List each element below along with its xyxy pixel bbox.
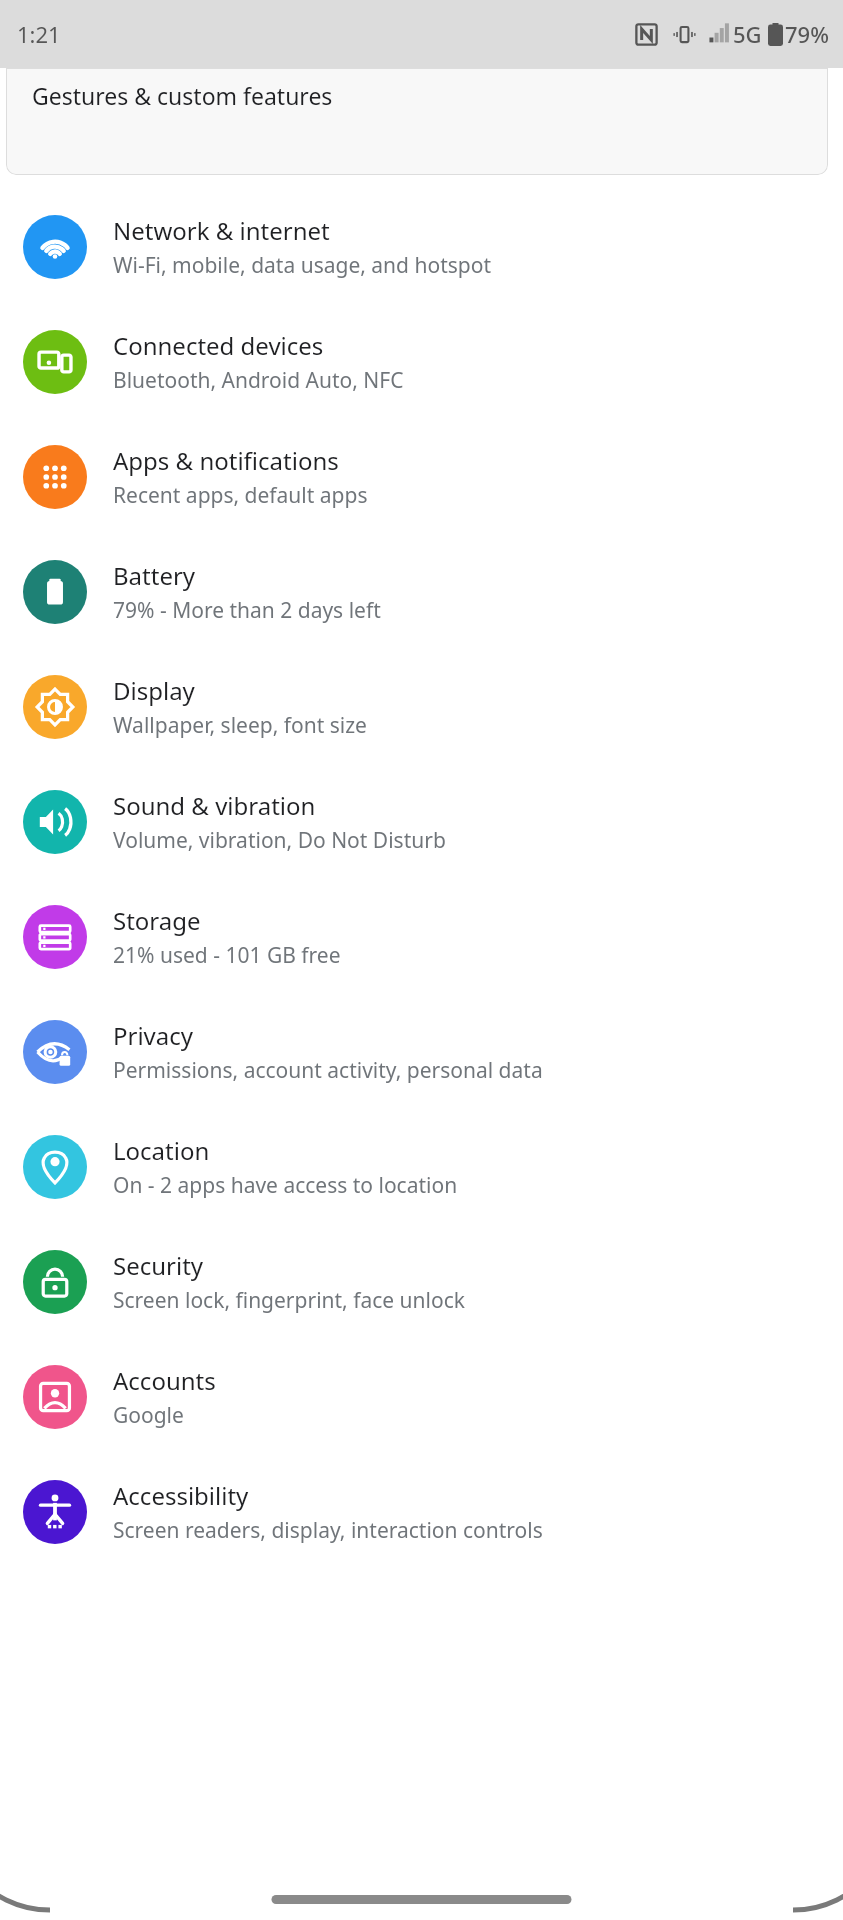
staticText: Screen lock, fingerprint, face unlock: [113, 1286, 465, 1315]
button[interactable]: Storage: [0, 879, 843, 994]
staticText: Location: [113, 1134, 210, 1167]
staticText: Security: [113, 1249, 204, 1282]
staticText: 21% used - 101 GB free: [113, 941, 341, 970]
staticText: Accessibility: [113, 1479, 249, 1512]
staticText: 79%: [785, 19, 829, 49]
staticText: Google: [113, 1401, 184, 1430]
button[interactable]: Accessibility: [0, 1454, 843, 1569]
button[interactable]: Gestures & custom features: [6, 68, 828, 175]
other: Connected devices: [23, 330, 87, 394]
other: Apps & notifications: [23, 445, 87, 509]
other: Accounts: [23, 1365, 87, 1429]
staticText: Gestures & custom features: [32, 80, 333, 111]
staticText: 79% - More than 2 days left: [113, 596, 381, 625]
button[interactable]: Battery: [0, 534, 843, 649]
other: Display: [23, 675, 87, 739]
other: Security: [23, 1250, 87, 1314]
button[interactable]: Network & internet: [0, 189, 843, 304]
staticText: Storage: [113, 904, 201, 937]
button[interactable]: Connected devices: [0, 304, 843, 419]
other: Accessibility: [23, 1480, 87, 1544]
other: Privacy: [23, 1020, 87, 1084]
staticText: Battery: [113, 559, 196, 592]
other: Network & internet: [23, 215, 87, 279]
other: Sound & vibration: [23, 790, 87, 854]
button[interactable]: Accounts: [0, 1339, 843, 1454]
button[interactable]: Apps & notifications: [0, 419, 843, 534]
staticText: Volume, vibration, Do Not Disturb: [113, 826, 446, 855]
staticText: Display: [113, 674, 195, 707]
staticText: Bluetooth, Android Auto, NFC: [113, 366, 404, 395]
staticText: Permissions, account activity, personal …: [113, 1056, 543, 1085]
button[interactable]: Security: [0, 1224, 843, 1339]
staticText: 1:21: [17, 19, 61, 49]
staticText: Wallpaper, sleep, font size: [113, 711, 367, 740]
button[interactable]: Privacy: [0, 994, 843, 1109]
staticText: On - 2 apps have access to location: [113, 1171, 458, 1200]
staticText: Apps & notifications: [113, 444, 339, 477]
staticText: 5G: [733, 19, 762, 49]
staticText: Connected devices: [113, 329, 324, 362]
button[interactable]: Display: [0, 649, 843, 764]
staticText: Recent apps, default apps: [113, 481, 368, 510]
button[interactable]: Location: [0, 1109, 843, 1224]
staticText: Accounts: [113, 1364, 216, 1397]
other: Location: [23, 1135, 87, 1199]
staticText: Screen readers, display, interaction con…: [113, 1516, 543, 1545]
staticText: Wi-Fi, mobile, data usage, and hotspot: [113, 251, 491, 280]
staticText: Sound & vibration: [113, 789, 316, 822]
other: Storage: [23, 905, 87, 969]
button[interactable]: Sound & vibration: [0, 764, 843, 879]
staticText: Network & internet: [113, 214, 330, 247]
other: Battery: [23, 560, 87, 624]
staticText: Privacy: [113, 1019, 194, 1052]
